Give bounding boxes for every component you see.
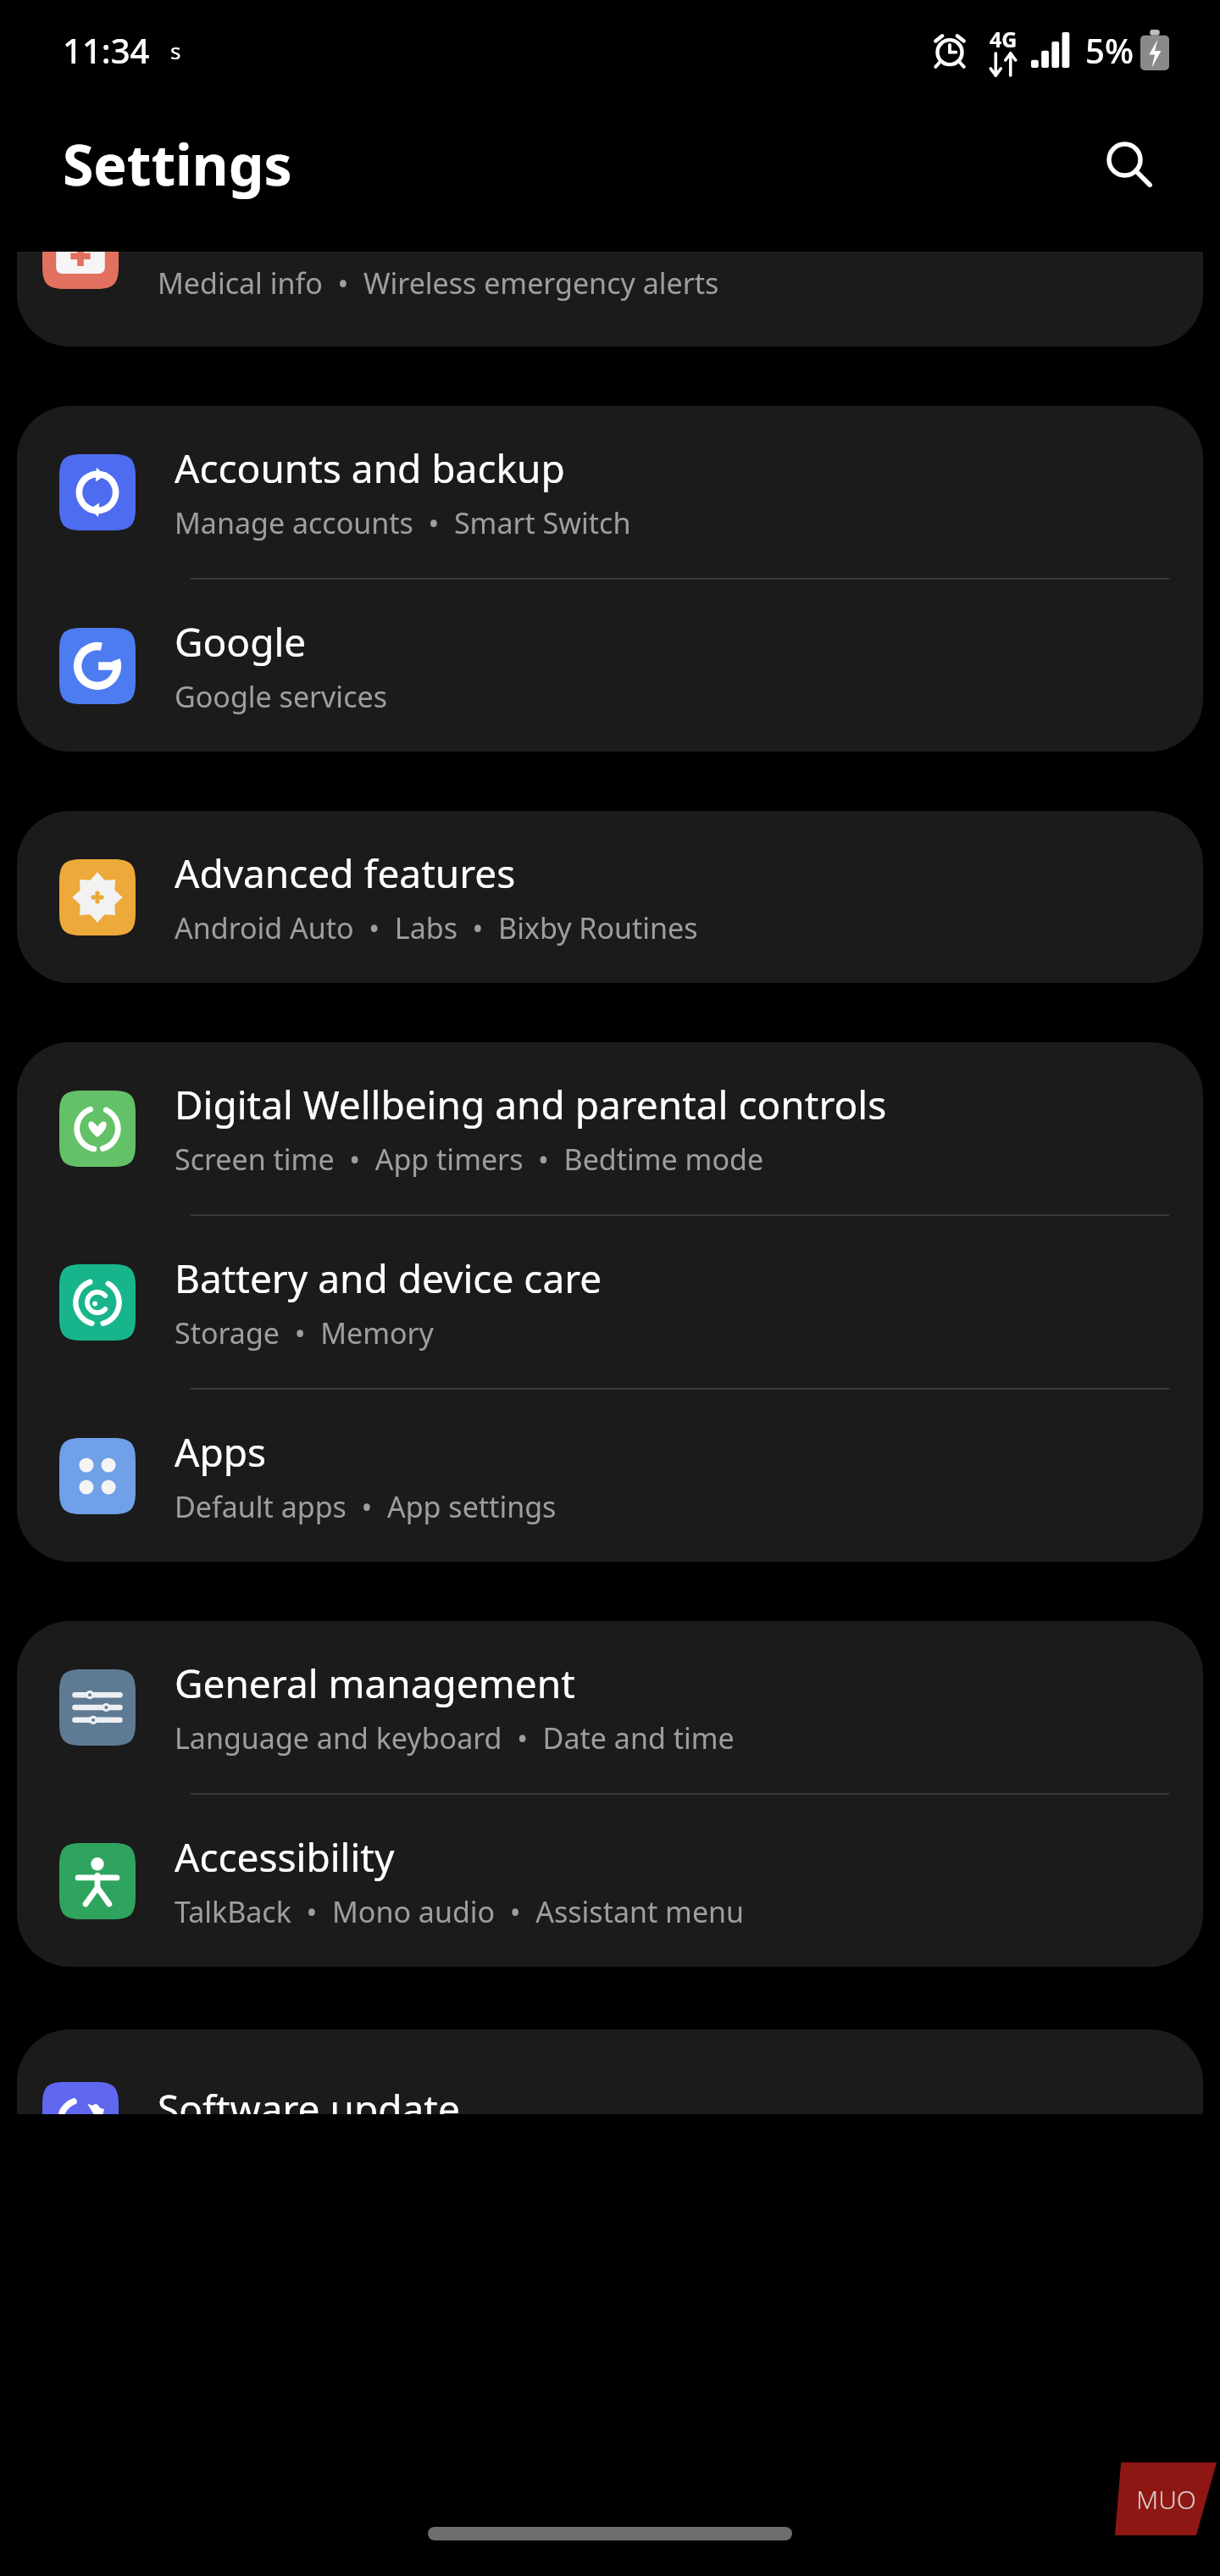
button[interactable]: Software update (17, 2029, 1203, 2114)
staticText: 4G (990, 25, 1018, 53)
staticText: TalkBack • Mono audio • Assistant menu (175, 1892, 745, 1931)
button[interactable]: Accounts and backup (17, 406, 1203, 578)
staticText: Default apps • App settings (175, 1487, 557, 1526)
staticText: Apps (175, 1425, 267, 1479)
staticText: Accessibility (175, 1830, 395, 1884)
button[interactable]: General management (17, 1621, 1203, 1793)
staticText: s (170, 36, 181, 65)
staticText: Accounts and backup (175, 441, 565, 495)
staticText: 11:34 (63, 27, 150, 73)
staticText: Language and keyboard • Date and time (175, 1718, 735, 1757)
staticText: Battery and device care (175, 1252, 602, 1305)
staticText: Settings (63, 125, 292, 202)
staticText: Manage accounts • Smart Switch (175, 503, 631, 542)
staticText: 5% (1085, 27, 1134, 73)
button[interactable]: Advanced features (17, 811, 1203, 983)
staticText: Advanced features (175, 847, 516, 900)
staticText: Android Auto • Labs • Bixby Routines (175, 908, 698, 947)
staticText: Medical info • Wireless emergency alerts (158, 264, 719, 303)
button[interactable]: Accessibility (17, 1795, 1203, 1967)
button[interactable]: Google (17, 580, 1203, 752)
button[interactable]: Battery and device care (17, 1216, 1203, 1388)
staticText: Software update (158, 2082, 460, 2114)
button[interactable]: Medical info • Wireless emergency alerts (17, 252, 1203, 347)
button[interactable]: Search settings (1088, 123, 1169, 204)
staticText: Digital Wellbeing and parental controls (175, 1078, 887, 1131)
staticText: MUO (1136, 2482, 1196, 2517)
staticText: General management (175, 1657, 575, 1710)
staticText: Storage • Memory (175, 1313, 434, 1352)
button[interactable]: Apps (17, 1390, 1203, 1562)
button[interactable]: Digital Wellbeing and parental controls (17, 1042, 1203, 1214)
staticText: Google services (175, 677, 387, 716)
staticText: Google (175, 615, 307, 669)
staticText: Screen time • App timers • Bedtime mode (175, 1140, 764, 1179)
